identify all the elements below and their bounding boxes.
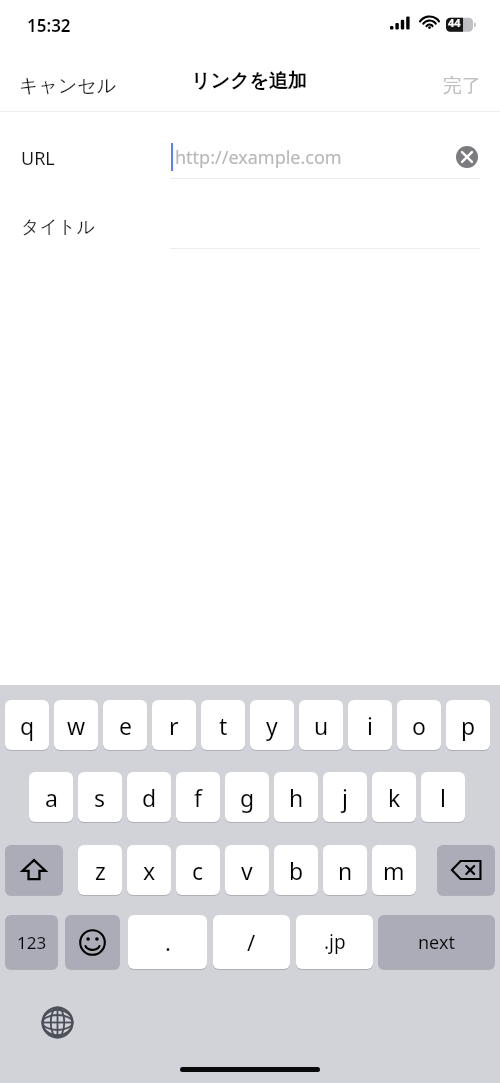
staticText: p (461, 710, 476, 741)
button[interactable]: t (201, 700, 245, 750)
button[interactable]: y (250, 700, 294, 750)
staticText: t (219, 710, 228, 741)
staticText: r (169, 710, 179, 741)
staticText: w (67, 710, 86, 741)
button[interactable]: d (127, 772, 171, 822)
staticText: 123 (17, 931, 47, 954)
button[interactable]: a (29, 772, 73, 822)
button[interactable]: z (78, 845, 122, 895)
staticText: g (240, 782, 255, 813)
staticText: z (95, 855, 106, 886)
staticText: l (440, 782, 446, 813)
button[interactable]: / (213, 915, 290, 969)
staticText: next (418, 930, 455, 955)
button[interactable]: q (5, 700, 49, 750)
staticText: s (94, 782, 106, 813)
staticText: y (266, 710, 278, 741)
staticText: o (412, 710, 426, 741)
staticText: 完了 (443, 74, 481, 98)
staticText: u (314, 710, 329, 741)
button[interactable]: v (225, 845, 269, 895)
button[interactable]: c (176, 845, 220, 895)
button[interactable]: i (348, 700, 392, 750)
button[interactable]: next (378, 915, 495, 969)
button[interactable]: r (152, 700, 196, 750)
button[interactable]: l (421, 772, 465, 822)
staticText: e (119, 710, 132, 741)
button[interactable]: k (372, 772, 416, 822)
button[interactable]: o (397, 700, 441, 750)
staticText: i (367, 710, 373, 741)
button[interactable]: j (323, 772, 367, 822)
staticText: j (342, 782, 348, 813)
staticText: m (383, 855, 405, 886)
button[interactable]: 完了 (428, 66, 496, 106)
button[interactable]: Change keyboard language (33, 998, 81, 1046)
button[interactable]: Shift (5, 845, 63, 895)
button[interactable]: . (128, 915, 207, 969)
button[interactable]: p (446, 700, 490, 750)
button[interactable]: u (299, 700, 343, 750)
staticText: http://example.com (175, 145, 342, 170)
button[interactable]: e (103, 700, 147, 750)
button[interactable]: g (225, 772, 269, 822)
button[interactable]: s (78, 772, 122, 822)
button[interactable]: 123 (5, 915, 58, 969)
button[interactable]: m (372, 845, 416, 895)
staticText: / (247, 927, 256, 957)
button[interactable]: x (127, 845, 171, 895)
button[interactable]: Clear text (456, 146, 478, 168)
staticText: v (241, 855, 253, 886)
button[interactable]: n (323, 845, 367, 895)
staticText: c (192, 855, 204, 886)
staticText: h (289, 782, 304, 813)
staticText: a (45, 782, 58, 813)
button[interactable]: b (274, 845, 318, 895)
staticText: x (143, 855, 156, 886)
button[interactable]: f (176, 772, 220, 822)
button[interactable]: Delete (437, 845, 495, 895)
button[interactable]: .jp (296, 915, 373, 969)
staticText: URL (21, 146, 55, 171)
staticText: n (338, 855, 353, 886)
button[interactable]: w (54, 700, 98, 750)
staticText: d (142, 782, 157, 813)
button[interactable]: Emoji (65, 915, 120, 969)
staticText: q (20, 710, 35, 741)
button[interactable]: h (274, 772, 318, 822)
staticText: k (388, 782, 401, 813)
staticText: キャンセル (19, 74, 117, 98)
staticText: b (289, 855, 304, 886)
staticText: . (165, 927, 171, 957)
staticText: .jp (324, 929, 346, 955)
staticText: 15:32 (27, 14, 71, 37)
staticText: リンクを追加 (191, 69, 307, 93)
staticText: 44 (448, 15, 461, 30)
staticText: タイトル (21, 216, 95, 239)
staticText: f (194, 782, 202, 813)
button[interactable]: キャンセル (4, 66, 132, 106)
